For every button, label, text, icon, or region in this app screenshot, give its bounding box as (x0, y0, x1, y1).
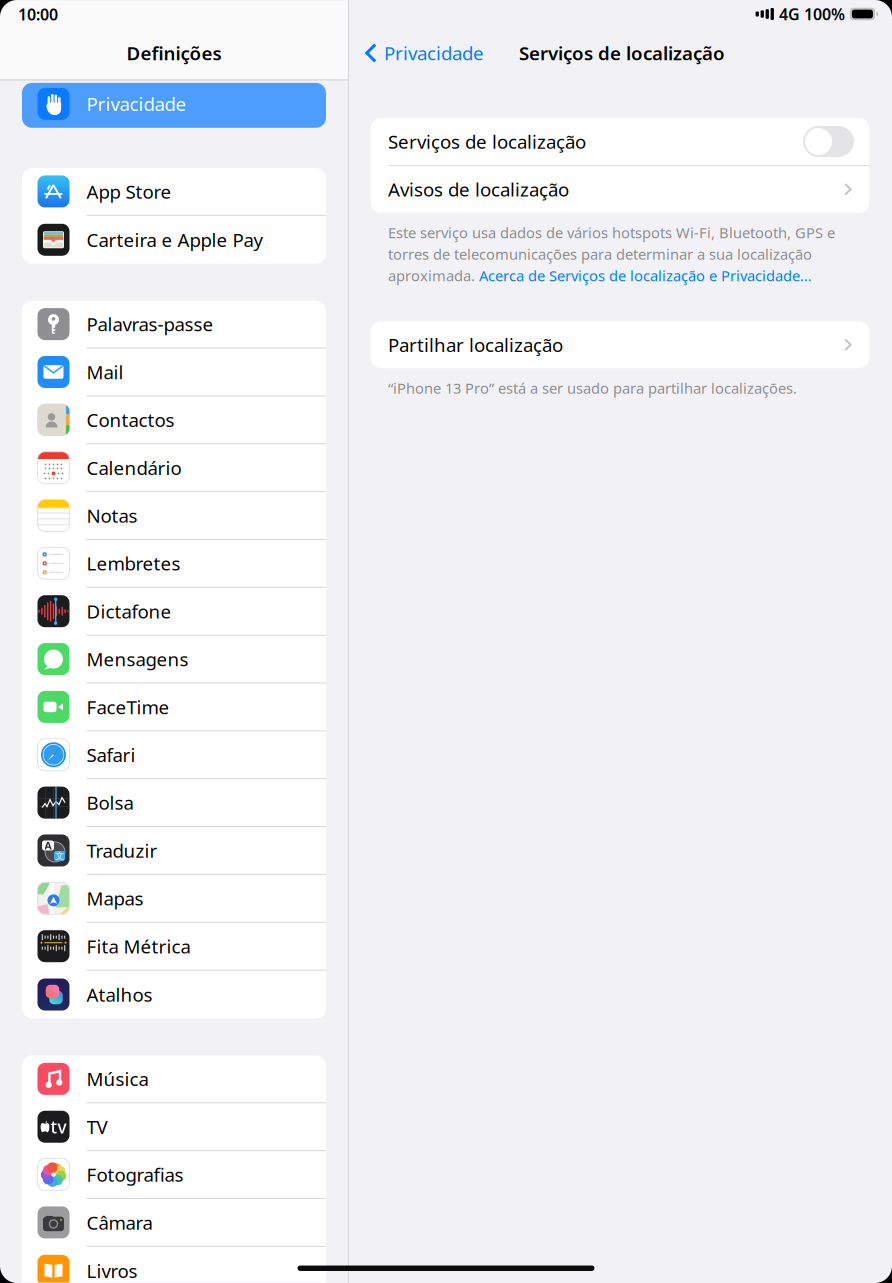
staticText: Avisos de localização (388, 177, 569, 202)
button[interactable]: Música (22, 1055, 326, 1103)
staticText: FaceTime (86, 694, 169, 719)
button[interactable]: Fita Métrica (22, 923, 326, 971)
staticText: Carteira e Apple Pay (86, 227, 263, 252)
button[interactable]: Bolsa (22, 779, 326, 827)
staticText: Dictafone (86, 599, 171, 624)
staticText: Traduzir (86, 838, 157, 863)
staticText: Mensagens (86, 647, 188, 671)
staticText: Safari (86, 742, 135, 767)
staticText: Acerca de Serviços de localização e Priv… (479, 266, 812, 285)
staticText: Livros (86, 1258, 137, 1283)
staticText: Mapas (86, 886, 143, 911)
staticText: 文 (55, 850, 64, 862)
staticText: aproximada. (388, 266, 479, 285)
staticText: Definições (126, 40, 221, 65)
staticText: 4G 100% (779, 3, 845, 25)
staticText: Câmara (86, 1210, 152, 1235)
staticText: torres de telecomunicações para determin… (388, 244, 812, 264)
staticText: Fotografias (86, 1162, 183, 1187)
button[interactable]: Notas (22, 492, 326, 540)
button[interactable]: Atalhos (22, 971, 326, 1018)
staticText: Bolsa (86, 790, 133, 815)
staticText: Privacidade (384, 41, 484, 65)
button[interactable]: Privacidade (349, 33, 484, 73)
button[interactable]: Palavras-passe (22, 301, 326, 349)
staticText: Palavras-passe (86, 312, 213, 336)
staticText: Serviços de localização (388, 129, 586, 154)
button[interactable]: FaceTime (22, 683, 326, 731)
staticText: Notas (86, 503, 137, 528)
button[interactable]: Livros (22, 1247, 326, 1283)
staticText: tv (50, 1115, 66, 1138)
button[interactable]: Mail (22, 349, 326, 396)
staticText: Este serviço usa dados de vários hotspot… (388, 223, 835, 242)
button[interactable]: Mensagens (22, 636, 326, 684)
staticText: Partilhar localização (388, 332, 563, 357)
button[interactable]: Avisos de localização (371, 166, 869, 213)
staticText: Calendário (86, 455, 181, 480)
button[interactable]: Calendário (22, 444, 326, 492)
button[interactable]: A (22, 827, 326, 875)
staticText: App Store (86, 179, 171, 204)
button[interactable]: Partilhar localização (371, 321, 869, 368)
button[interactable]: Serviços de localização (803, 126, 854, 157)
button[interactable]: App Store (22, 168, 326, 216)
button[interactable]: Dictafone (22, 588, 326, 636)
button[interactable]: Carteira e Apple Pay (22, 216, 326, 264)
staticText: 10:00 (18, 4, 58, 25)
staticText: “iPhone 13 Pro” está a ser usado para pa… (388, 378, 797, 398)
button[interactable]: Contactos (22, 396, 326, 444)
staticText: Privacidade (86, 91, 186, 116)
staticText: Lembretes (86, 551, 180, 576)
button[interactable]: Fotografias (22, 1151, 326, 1199)
staticText: TV (86, 1114, 107, 1139)
button[interactable]: Câmara (22, 1199, 326, 1247)
staticText: A (44, 838, 51, 853)
staticText: Fita Métrica (86, 934, 190, 959)
staticText: Serviços de localização (519, 41, 725, 65)
staticText: Música (86, 1066, 148, 1091)
button[interactable]: tv (22, 1103, 326, 1151)
button[interactable]: Privacidade (22, 80, 326, 128)
button[interactable]: Safari (22, 731, 326, 779)
staticText: Contactos (86, 407, 174, 432)
button[interactable]: Mapas (22, 875, 326, 923)
staticText: Mail (86, 360, 123, 384)
staticText: Atalhos (86, 982, 152, 1007)
button[interactable]: Lembretes (22, 540, 326, 588)
